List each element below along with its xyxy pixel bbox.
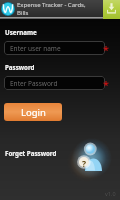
button[interactable]: Download <box>103 0 120 19</box>
staticText: Username <box>5 28 37 36</box>
button[interactable]: Login <box>4 103 62 121</box>
staticText: Bills <box>17 9 29 17</box>
button[interactable]: Enter user name <box>4 41 105 55</box>
button[interactable]: Forget Password <box>5 149 57 157</box>
staticText: * <box>103 42 109 57</box>
staticText: v1.0 <box>105 190 116 197</box>
staticText: * <box>103 77 109 92</box>
staticText: Expense Tracker - Cards, <box>17 1 86 9</box>
staticText: ? <box>82 158 87 170</box>
button[interactable]: Enter Password <box>4 76 105 90</box>
staticText: Password <box>5 63 35 71</box>
staticText: Enter Password <box>10 79 58 88</box>
staticText: Login <box>21 106 46 119</box>
staticText: Enter user name <box>10 44 61 53</box>
